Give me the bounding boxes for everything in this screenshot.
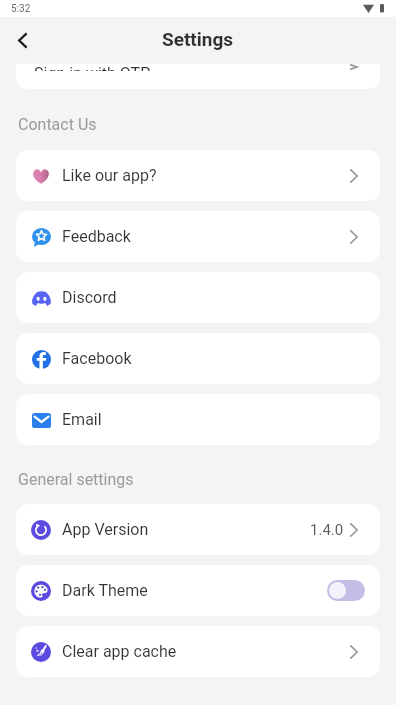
staticText: Contact Us bbox=[18, 115, 97, 134]
staticText: Sign in with OTP bbox=[34, 64, 151, 71]
staticText: Dark Theme bbox=[62, 581, 148, 600]
staticText: App Version bbox=[62, 520, 149, 539]
button[interactable]: Like our app? bbox=[16, 150, 380, 201]
button[interactable]: Sign in with OTP bbox=[16, 64, 380, 89]
button[interactable]: App Version bbox=[16, 504, 380, 555]
staticText: Email bbox=[62, 410, 102, 429]
staticText: Settings bbox=[162, 28, 234, 50]
staticText: General settings bbox=[18, 470, 134, 489]
staticText: Feedback bbox=[62, 227, 131, 246]
staticText: Discord bbox=[62, 288, 117, 307]
button[interactable]: Facebook bbox=[16, 333, 380, 384]
button[interactable]: Clear app cache bbox=[16, 626, 380, 677]
staticText: Facebook bbox=[62, 349, 132, 368]
staticText: Like our app? bbox=[62, 166, 157, 185]
staticText: 1.4.0 bbox=[310, 521, 344, 539]
button[interactable]: Email bbox=[16, 394, 380, 445]
button[interactable]: Back bbox=[6, 24, 38, 56]
button[interactable]: Feedback bbox=[16, 211, 380, 262]
button[interactable]: Discord bbox=[16, 272, 380, 323]
button[interactable]: Dark Theme bbox=[16, 565, 380, 616]
staticText: 5:32 bbox=[11, 3, 31, 15]
button[interactable]: Dark theme toggle bbox=[327, 580, 365, 601]
staticText: Clear app cache bbox=[62, 642, 177, 661]
